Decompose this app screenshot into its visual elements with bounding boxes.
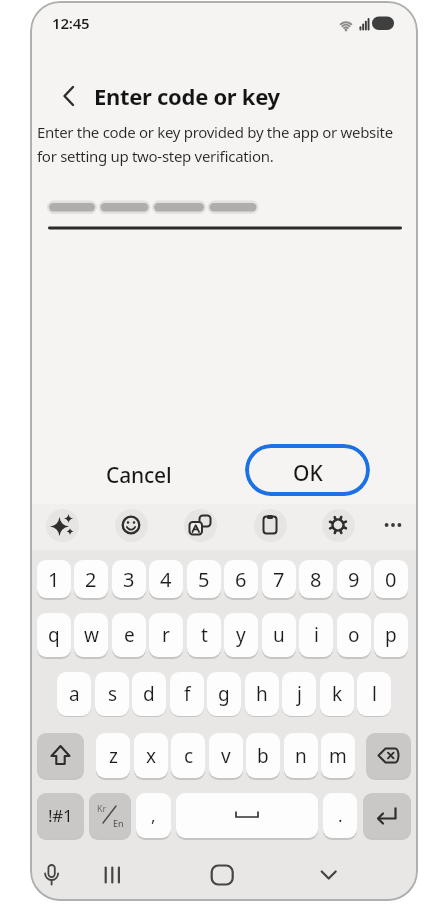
- button[interactable]: z: [96, 733, 130, 778]
- button[interactable]: ,: [136, 793, 171, 838]
- button[interactable]: j: [282, 672, 316, 716]
- button[interactable]: c: [171, 733, 205, 778]
- staticText: OK: [293, 459, 323, 488]
- button[interactable]: 1: [37, 560, 71, 598]
- button[interactable]: [366, 733, 411, 778]
- staticText: z: [109, 743, 118, 769]
- staticText: ,: [151, 804, 156, 827]
- button[interactable]: [37, 733, 84, 778]
- staticText: l: [372, 681, 377, 707]
- button[interactable]: r: [149, 613, 183, 657]
- button[interactable]: h: [245, 672, 279, 716]
- button[interactable]: [46, 509, 79, 542]
- button[interactable]: 9: [337, 560, 371, 598]
- button[interactable]: [363, 793, 411, 838]
- button[interactable]: t: [187, 613, 221, 657]
- button[interactable]: 7: [262, 560, 296, 598]
- button[interactable]: [377, 509, 410, 542]
- button[interactable]: o: [337, 613, 371, 657]
- button[interactable]: 0: [374, 560, 408, 598]
- button[interactable]: y: [224, 613, 258, 657]
- button[interactable]: w: [74, 613, 108, 657]
- staticText: i: [314, 622, 319, 648]
- staticText: Kr: [97, 802, 107, 814]
- button[interactable]: [54, 81, 84, 111]
- button[interactable]: u: [262, 613, 296, 657]
- button[interactable]: OK: [245, 444, 370, 496]
- staticText: c: [184, 743, 193, 769]
- button[interactable]: e: [112, 613, 146, 657]
- button[interactable]: 2: [74, 560, 108, 598]
- button[interactable]: s: [95, 672, 129, 716]
- staticText: g: [218, 681, 230, 707]
- button[interactable]: [190, 854, 254, 901]
- staticText: 1: [48, 566, 60, 593]
- button[interactable]: [298, 854, 358, 901]
- staticText: o: [348, 622, 360, 648]
- staticText: s: [108, 681, 117, 707]
- staticText: a: [69, 681, 80, 707]
- button[interactable]: g: [207, 672, 241, 716]
- button[interactable]: 4: [149, 560, 183, 598]
- button[interactable]: x: [134, 733, 168, 778]
- staticText: h: [256, 681, 268, 707]
- staticText: 9: [348, 566, 360, 593]
- button[interactable]: i: [299, 613, 333, 657]
- staticText: w: [84, 622, 99, 648]
- button[interactable]: [176, 793, 318, 838]
- staticText: 0: [385, 566, 397, 593]
- button[interactable]: k: [320, 672, 354, 716]
- staticText: j: [297, 681, 302, 707]
- button[interactable]: [322, 509, 355, 542]
- staticText: n: [295, 743, 307, 769]
- staticText: Enter the code or key provided by the ap…: [37, 122, 393, 166]
- button[interactable]: [254, 509, 287, 542]
- button[interactable]: [94, 854, 154, 901]
- button[interactable]: [115, 509, 148, 542]
- staticText: q: [48, 622, 60, 648]
- staticText: Cancel: [106, 461, 172, 490]
- staticText: 7: [273, 566, 285, 593]
- button[interactable]: [184, 509, 217, 542]
- button[interactable]: 3: [112, 560, 146, 598]
- staticText: y: [236, 622, 246, 648]
- staticText: u: [273, 622, 285, 648]
- button[interactable]: 6: [224, 560, 258, 598]
- staticText: !#1: [48, 804, 73, 827]
- staticText: t: [201, 622, 208, 648]
- button[interactable]: [34, 854, 94, 901]
- staticText: 8: [310, 566, 322, 593]
- staticText: .: [338, 804, 343, 827]
- button[interactable]: l: [357, 672, 391, 716]
- staticText: f: [184, 681, 191, 707]
- staticText: 5: [198, 566, 210, 593]
- button[interactable]: !#1: [37, 793, 84, 838]
- staticText: e: [124, 622, 135, 648]
- button[interactable]: 8: [299, 560, 333, 598]
- staticText: 12:45: [52, 13, 90, 33]
- staticText: En: [113, 817, 124, 829]
- staticText: x: [146, 743, 156, 769]
- staticText: b: [257, 743, 269, 769]
- staticText: 3: [123, 566, 135, 593]
- button[interactable]: .: [323, 793, 357, 838]
- button[interactable]: n: [284, 733, 318, 778]
- button[interactable]: Cancel: [79, 453, 199, 497]
- button[interactable]: p: [374, 613, 408, 657]
- staticText: d: [143, 681, 155, 707]
- button[interactable]: f: [170, 672, 204, 716]
- staticText: 6: [235, 566, 247, 593]
- button[interactable]: Kr: [89, 793, 131, 838]
- button[interactable]: v: [209, 733, 243, 778]
- button[interactable]: m: [321, 733, 355, 778]
- staticText: 4: [160, 566, 172, 593]
- button[interactable]: d: [132, 672, 166, 716]
- button[interactable]: 5: [187, 560, 221, 598]
- staticText: Enter code or key: [94, 81, 280, 111]
- staticText: v: [221, 743, 231, 769]
- button[interactable]: q: [37, 613, 71, 657]
- button[interactable]: b: [246, 733, 280, 778]
- button[interactable]: a: [57, 672, 91, 716]
- staticText: 2: [85, 566, 97, 593]
- staticText: k: [332, 681, 342, 707]
